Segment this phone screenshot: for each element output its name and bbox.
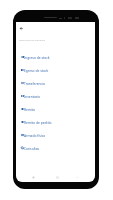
button[interactable]: Recents bbox=[29, 173, 37, 181]
staticText: Egreso de stock bbox=[24, 68, 49, 72]
button[interactable]: Inventario bbox=[16, 89, 95, 102]
staticText: Transferencia bbox=[24, 81, 45, 85]
staticText: Armado físico bbox=[24, 133, 46, 137]
button[interactable]: Back bbox=[17, 24, 25, 32]
button[interactable]: Transferencia bbox=[16, 76, 95, 89]
button[interactable]: Consultas bbox=[16, 141, 95, 154]
staticText: Consultas bbox=[24, 146, 40, 150]
staticText: Ingreso de stock bbox=[24, 55, 50, 59]
staticText: Remito de pedido bbox=[24, 120, 52, 124]
button[interactable]: Egreso de stock bbox=[16, 63, 95, 76]
staticText: Remito bbox=[24, 107, 36, 111]
button[interactable]: Home bbox=[53, 173, 61, 181]
button[interactable]: Ingreso de stock bbox=[16, 50, 95, 63]
button[interactable]: Remito de pedido bbox=[16, 115, 95, 128]
button[interactable]: Armado físico bbox=[16, 128, 95, 141]
staticText: Inventario bbox=[24, 94, 40, 98]
staticText: Seleccione una operación bbox=[19, 39, 46, 42]
button[interactable]: Remito bbox=[16, 102, 95, 115]
